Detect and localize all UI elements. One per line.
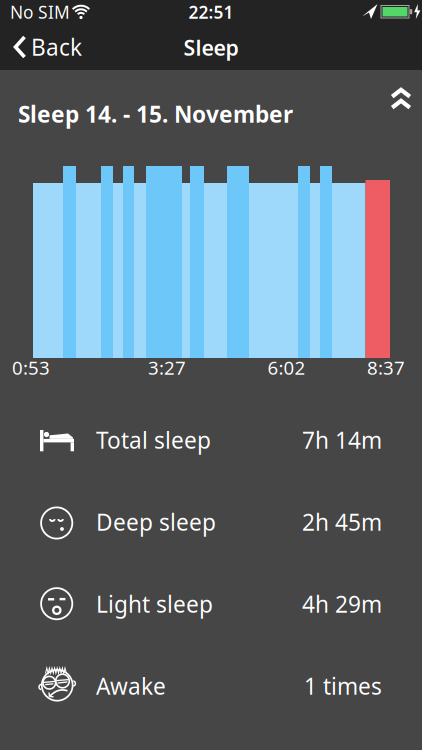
staticText: 0:53	[12, 355, 50, 380]
staticText: 2h 45m	[302, 507, 382, 537]
staticText: 22:51	[188, 0, 233, 23]
staticText: 8:37	[367, 355, 405, 380]
staticText: 4h 29m	[302, 589, 382, 619]
staticText: Total sleep	[96, 425, 211, 455]
staticText: 1 times	[304, 671, 382, 701]
staticText: No SIM	[10, 0, 70, 23]
staticText: 6:02	[267, 355, 305, 380]
staticText: Sleep 14. - 15. November	[18, 99, 293, 129]
staticText: Back	[31, 32, 82, 62]
button[interactable]	[391, 88, 411, 128]
button[interactable]: Back	[0, 24, 82, 70]
staticText: 7h 14m	[302, 425, 382, 455]
staticText: Awake	[96, 671, 166, 701]
staticText: 3:27	[148, 355, 186, 380]
staticText: Light sleep	[96, 589, 213, 619]
staticText: Deep sleep	[96, 507, 216, 537]
staticText: Sleep	[183, 33, 238, 62]
